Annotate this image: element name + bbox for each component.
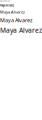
staticText: Maya Alvarez [0, 17, 33, 24]
staticText: Maya Alvarez [0, 4, 14, 7]
staticText: Maya Alvarez [0, 0, 10, 2]
staticText: Maya Alvarez [0, 26, 42, 35]
staticText: Maya Alvarez [0, 9, 25, 15]
